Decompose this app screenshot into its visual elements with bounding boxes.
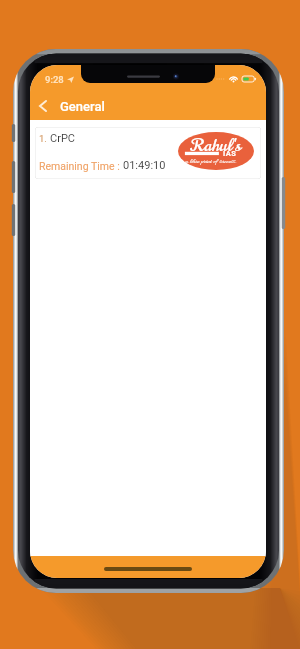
staticText: a blue print of success. [185,157,237,166]
staticText: General [60,99,105,114]
staticText: Rahul's [191,134,242,158]
button[interactable]: Back [30,93,56,119]
staticText: Remaining Time : [39,160,123,172]
button[interactable]: 1. [35,127,261,179]
staticText: 01:49:10 [123,159,166,172]
staticText: 1. [39,133,47,144]
staticText: 9:28 [45,74,64,85]
staticText: IAS [223,149,237,158]
staticText: CrPC [50,132,75,145]
